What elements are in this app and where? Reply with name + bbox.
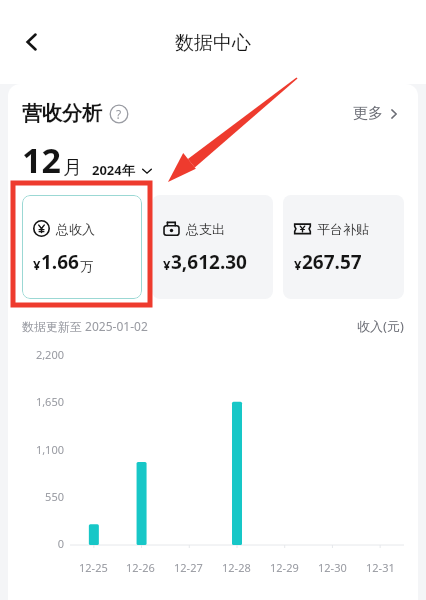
staticText: 0 [57,536,64,551]
staticText: ¥ [163,256,171,274]
staticText: 550 [45,489,64,504]
staticText: ? [116,106,122,122]
button[interactable]: Back [10,20,54,64]
staticText: 平台补贴 [317,221,369,237]
button[interactable]: 平台补贴 [283,195,404,299]
staticText: 3,612.30 [171,249,247,275]
staticText: 营收分析 [22,101,102,126]
staticText: 总收入 [56,221,95,237]
staticText: 数据中心 [175,31,251,55]
staticText: 12-28 [222,560,251,575]
staticText: ¥ [294,256,302,274]
staticText: 12-30 [318,560,347,575]
button[interactable]: 更多 [349,100,404,127]
staticText: 1.66 [41,249,79,275]
staticText: 月 [63,156,82,180]
staticText: 12-29 [270,560,299,575]
staticText: 1,100 [35,442,64,457]
staticText: 总支出 [186,221,225,237]
staticText: 12-25 [79,560,108,575]
button[interactable]: 总收入 [22,195,142,299]
staticText: ¥ [33,256,41,274]
button[interactable]: 12 [22,137,418,183]
staticText: 12-31 [366,560,395,575]
staticText: 2024年 [92,161,135,179]
staticText: 万 [80,258,93,274]
staticText: 12 [22,137,61,183]
staticText: 2,200 [35,347,64,362]
staticText: 267.57 [302,249,362,275]
button[interactable]: 总支出 [152,195,273,299]
button[interactable]: Help [109,104,129,124]
staticText: 12-27 [174,560,203,575]
staticText: 更多 [353,104,383,123]
staticText: 12-26 [126,560,155,575]
staticText: 1,650 [35,394,64,409]
staticText: 数据更新至 2025-01-02 [22,318,148,334]
staticText: 收入(元) [357,317,404,335]
